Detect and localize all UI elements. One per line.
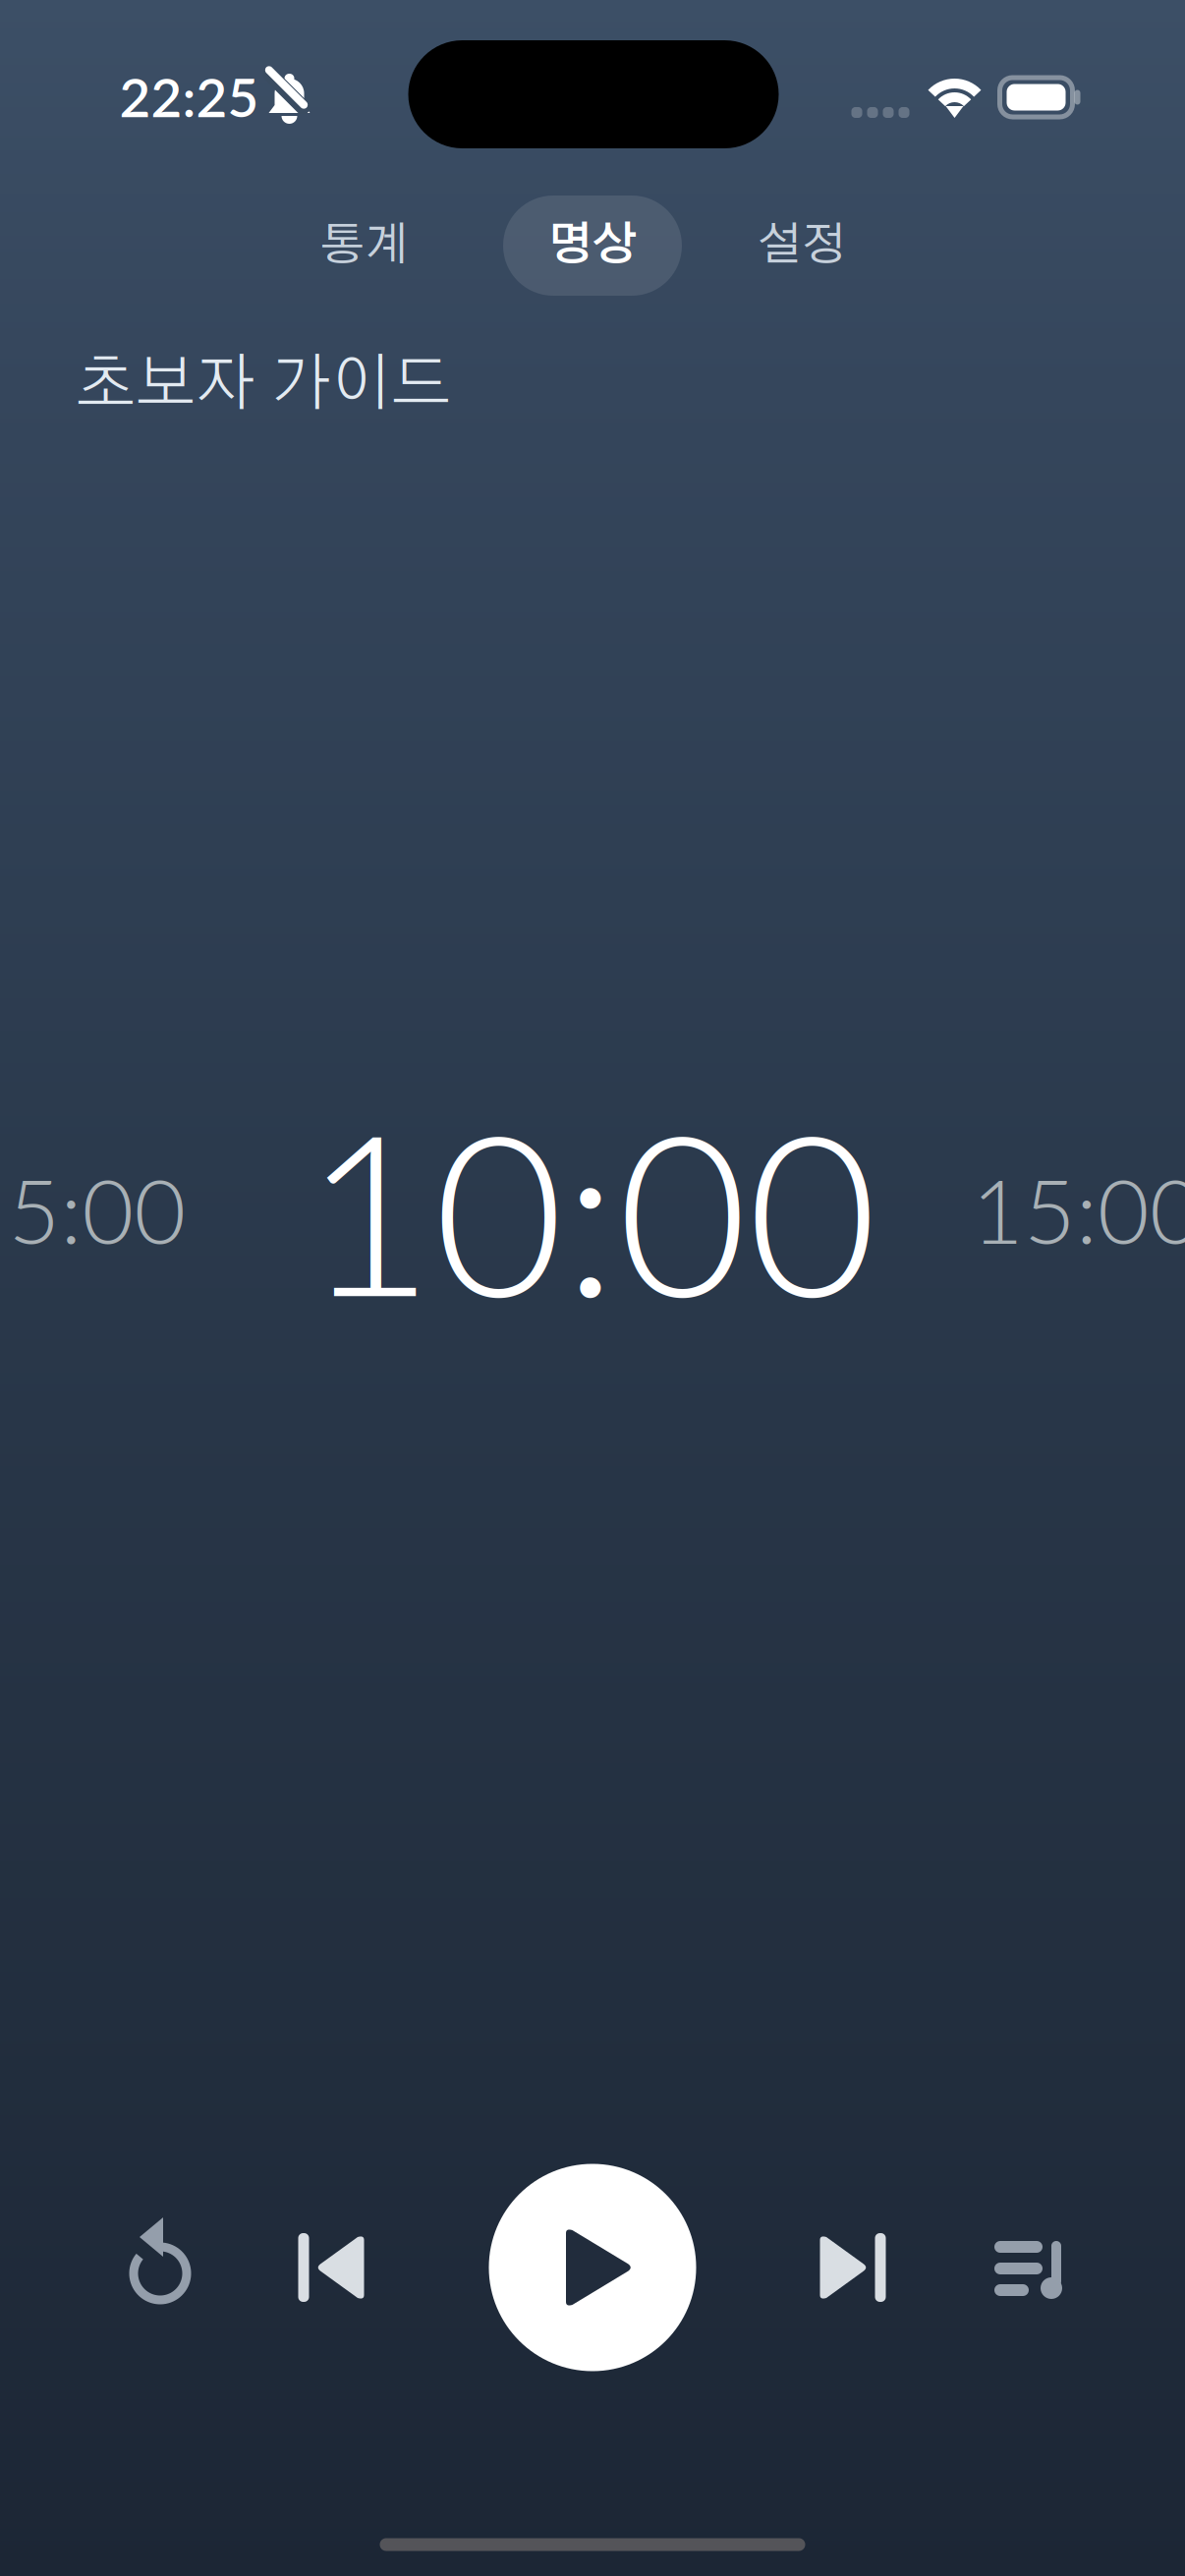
staticText: 15:00 [972,1156,1185,1263]
staticText: 초보자 가이드 [76,354,451,417]
staticText: 22:25 [119,64,259,129]
button[interactable]: Reset [86,2194,234,2341]
staticText: 10:00 [304,1075,877,1344]
button[interactable]: Next [779,2194,927,2341]
button[interactable]: Playlist [954,2196,1101,2343]
button[interactable]: Previous [257,2194,405,2341]
button[interactable]: 통계 [275,196,454,296]
staticText: 통계 [320,223,409,269]
staticText: 5:00 [8,1156,186,1263]
button[interactable]: 설정 [712,196,891,296]
staticText: 명상 [547,223,638,269]
staticText: 설정 [758,223,846,269]
button[interactable]: 명상 [503,196,682,296]
button[interactable]: Play [489,2164,696,2371]
